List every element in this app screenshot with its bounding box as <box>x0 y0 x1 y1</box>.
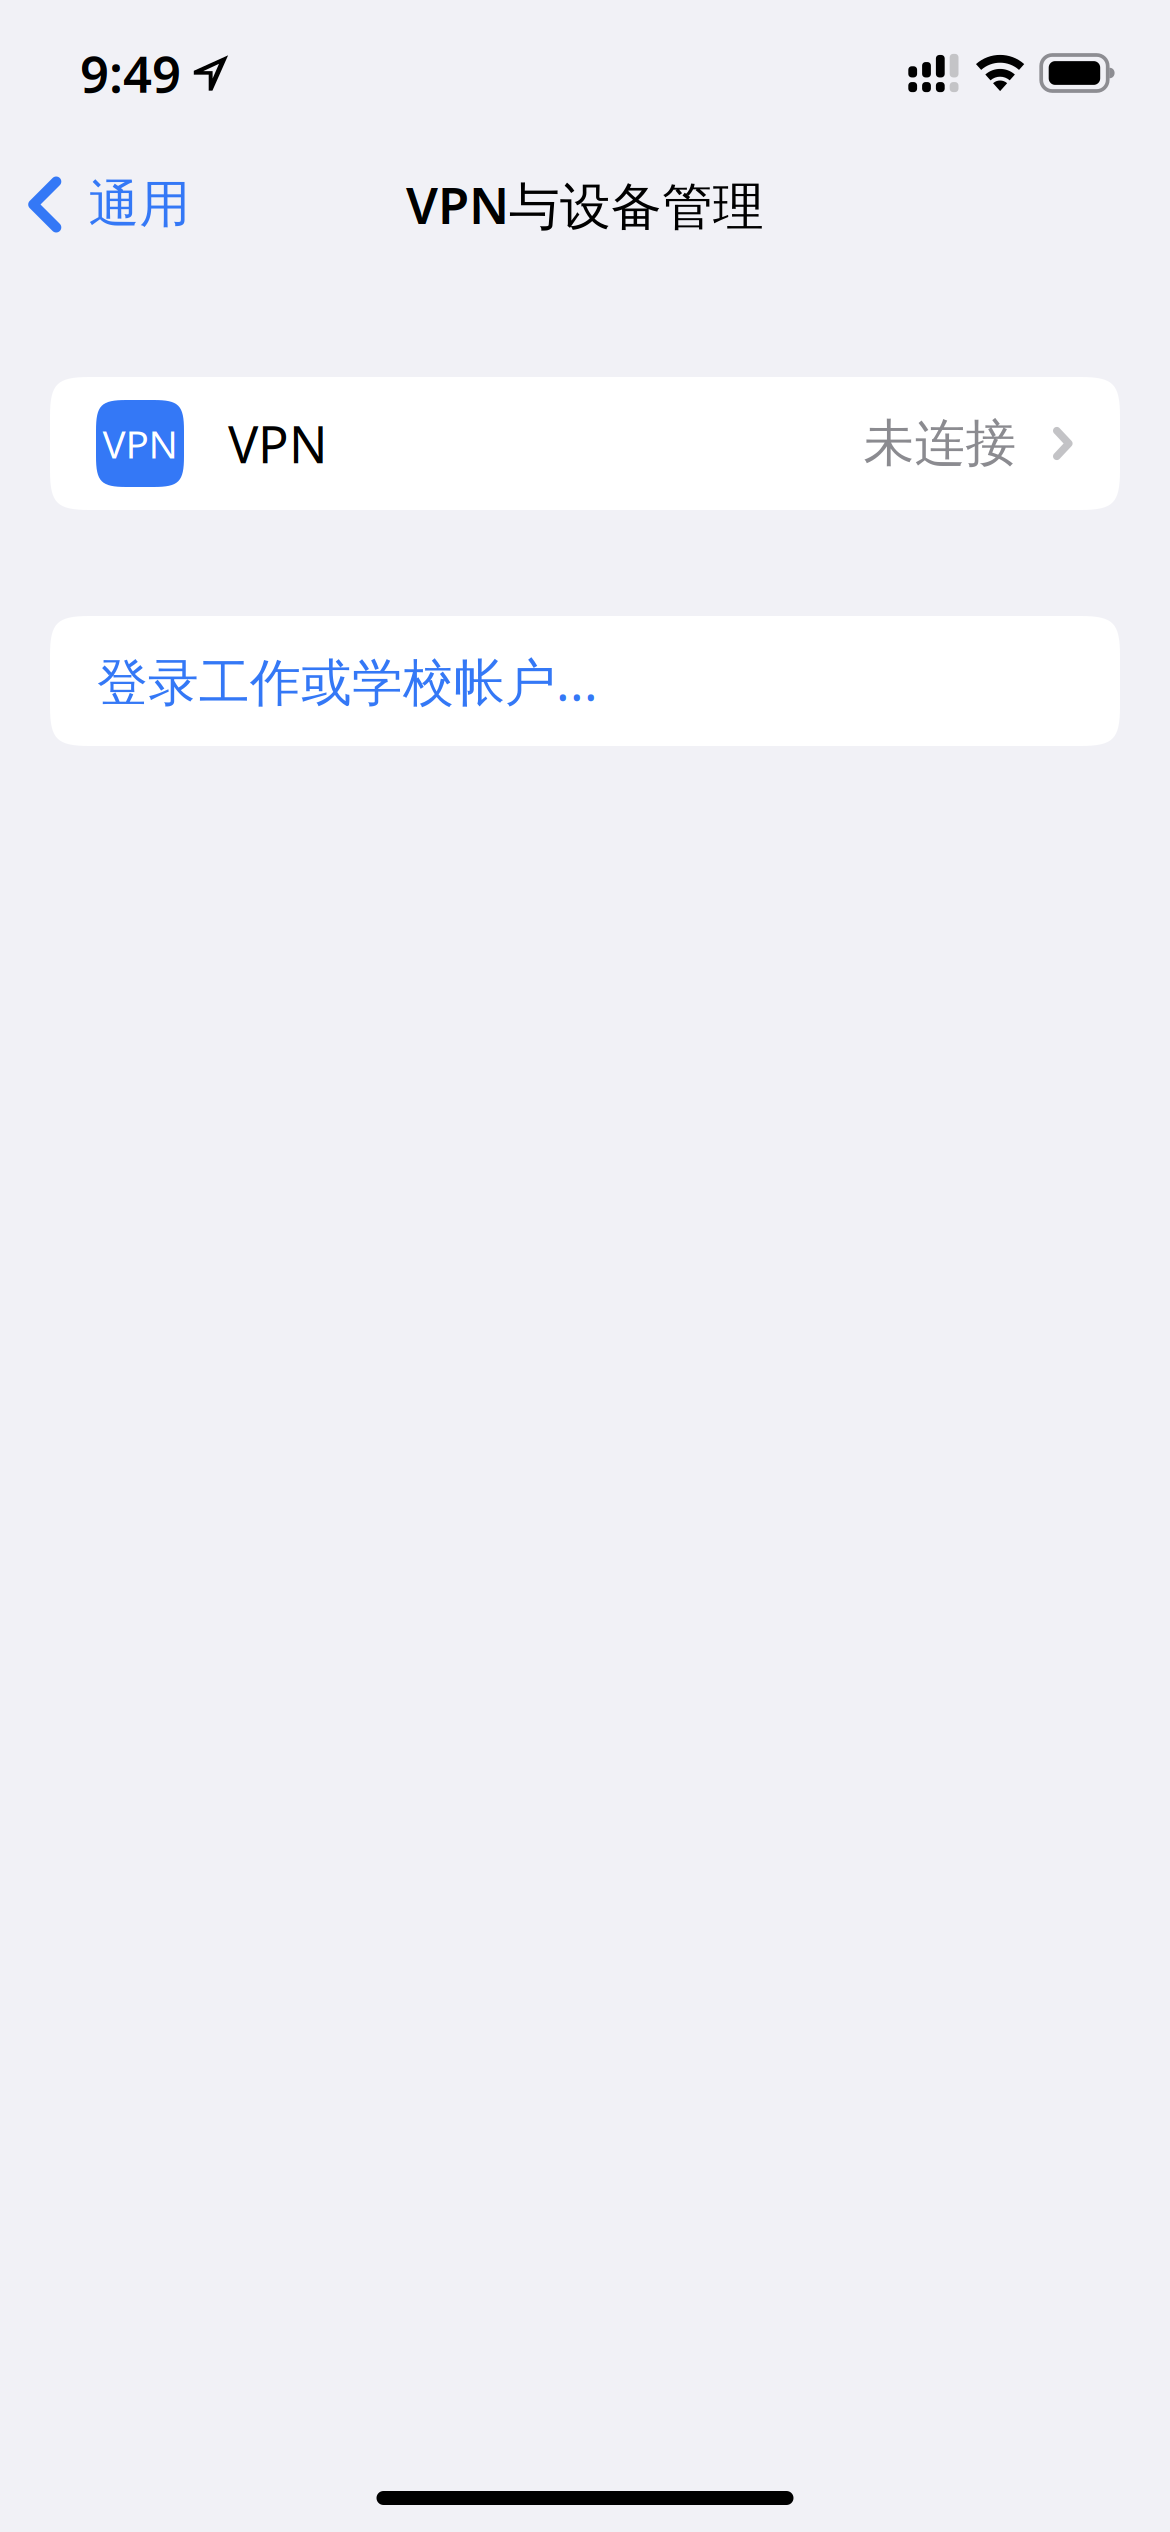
staticText: 9:49 <box>80 39 181 107</box>
button[interactable]: VPN <box>50 377 1120 510</box>
button[interactable]: 登录工作或学校帐户... <box>50 616 1120 746</box>
staticText: VPN <box>102 418 177 469</box>
staticText: VPN <box>228 410 328 477</box>
staticText: 登录工作或学校帐户... <box>97 647 598 715</box>
staticText: 通用 <box>88 173 190 236</box>
button[interactable]: 返回 通用 <box>0 146 214 263</box>
staticText: 未连接 <box>864 412 1017 475</box>
staticText: VPN与设备管理 <box>406 171 764 238</box>
